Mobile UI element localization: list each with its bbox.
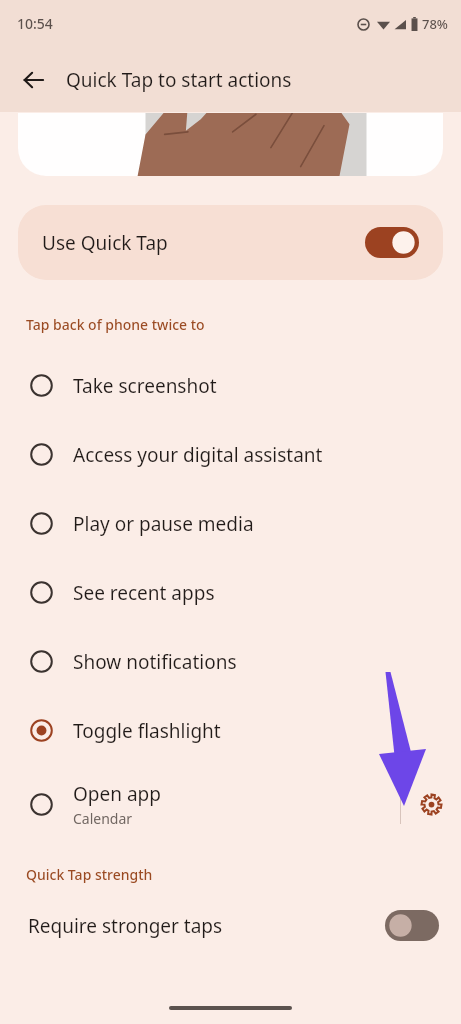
- staticText: See recent apps: [73, 580, 215, 606]
- staticText: Take screenshot: [73, 373, 217, 399]
- staticText: Open app: [73, 781, 161, 807]
- button[interactable]: Access your digital assistant: [0, 420, 461, 489]
- button[interactable]: See recent apps: [0, 558, 461, 627]
- staticText: Access your digital assistant: [73, 442, 323, 468]
- staticText: 78%: [422, 15, 448, 33]
- button[interactable]: Back: [12, 59, 54, 101]
- button[interactable]: Require stronger taps: [0, 904, 461, 947]
- button[interactable]: Open app settings: [401, 792, 461, 817]
- staticText: Play or pause media: [73, 511, 254, 537]
- button[interactable]: Show notifications: [0, 627, 461, 696]
- staticText: Quick Tap to start actions: [66, 67, 292, 93]
- staticText: Show notifications: [73, 649, 237, 675]
- staticText: Require stronger taps: [28, 913, 385, 939]
- button[interactable]: Use Quick Tap: [18, 205, 443, 280]
- staticText: Use Quick Tap: [42, 230, 365, 256]
- button[interactable]: Play or pause media: [0, 489, 461, 558]
- staticText: 10:54: [17, 14, 53, 33]
- button[interactable]: Take screenshot: [0, 351, 461, 420]
- staticText: Calendar: [73, 809, 133, 828]
- staticText: Quick Tap strength: [26, 865, 153, 884]
- button[interactable]: Open app: [0, 781, 400, 828]
- button[interactable]: Toggle flashlight: [0, 696, 461, 765]
- staticText: Tap back of phone twice to: [26, 315, 205, 334]
- button[interactable]: [18, 113, 443, 176]
- staticText: Toggle flashlight: [73, 718, 221, 744]
